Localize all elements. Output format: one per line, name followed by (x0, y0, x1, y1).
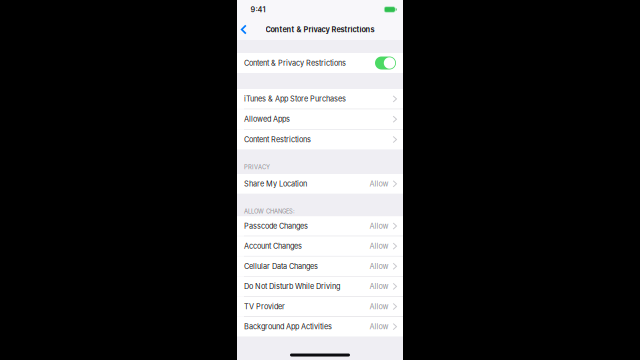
staticText: Allow (369, 179, 388, 188)
staticText: Allow (369, 242, 388, 251)
button[interactable]: Account Changes (237, 236, 403, 256)
button[interactable]: TV Provider (237, 297, 403, 316)
staticText: Content & Privacy Restrictions (244, 59, 346, 67)
staticText: Do Not Disturb While Driving (244, 282, 340, 291)
staticText: PRIVACY (244, 164, 270, 171)
button[interactable]: Content Restrictions (237, 130, 403, 149)
staticText: Content & Privacy Restrictions (265, 25, 374, 34)
staticText: Background App Activities (244, 322, 332, 331)
button[interactable]: Allowed Apps (237, 109, 403, 129)
staticText: 9:41 (250, 5, 265, 14)
button[interactable]: Do Not Disturb While Driving (237, 277, 403, 296)
button[interactable]: iTunes & App Store Purchases (237, 89, 403, 109)
staticText: Allow (369, 322, 388, 331)
staticText: Allow (369, 222, 388, 230)
button[interactable]: Background App Activities (237, 317, 403, 336)
button[interactable]: Content & Privacy Restrictions (237, 53, 403, 73)
staticText: Passcode Changes (244, 222, 308, 230)
button[interactable]: Cellular Data Changes (237, 256, 403, 276)
button[interactable]: Share My Location (237, 174, 403, 194)
button[interactable]: Back (237, 19, 254, 40)
staticText: Allow (369, 262, 388, 271)
staticText: Account Changes (244, 242, 302, 251)
staticText: Content Restrictions (244, 135, 311, 144)
staticText: iTunes & App Store Purchases (244, 94, 346, 103)
staticText: Allowed Apps (244, 115, 290, 124)
staticText: Allow (369, 282, 388, 291)
button[interactable]: Passcode Changes (237, 216, 403, 236)
staticText: Allow (369, 302, 388, 311)
staticText: TV Provider (244, 302, 285, 311)
staticText: Share My Location (244, 179, 307, 188)
staticText: Cellular Data Changes (244, 262, 318, 271)
staticText: ALLOW CHANGES: (244, 208, 295, 215)
